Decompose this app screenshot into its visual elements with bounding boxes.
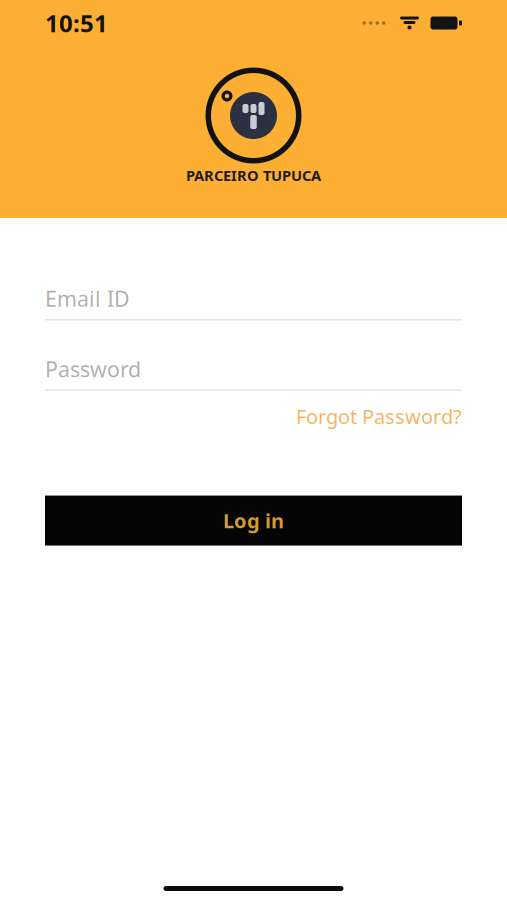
staticText: Password — [45, 355, 141, 383]
button[interactable]: Forgot Password? — [296, 397, 462, 436]
staticText: Forgot Password? — [296, 403, 462, 430]
staticText: PARCEIRO TUPUCA — [186, 165, 321, 185]
button[interactable]: Log in — [45, 496, 462, 546]
staticText: Log in — [223, 507, 284, 534]
staticText: Email ID — [45, 284, 130, 313]
staticText: 10:51 — [45, 7, 108, 39]
